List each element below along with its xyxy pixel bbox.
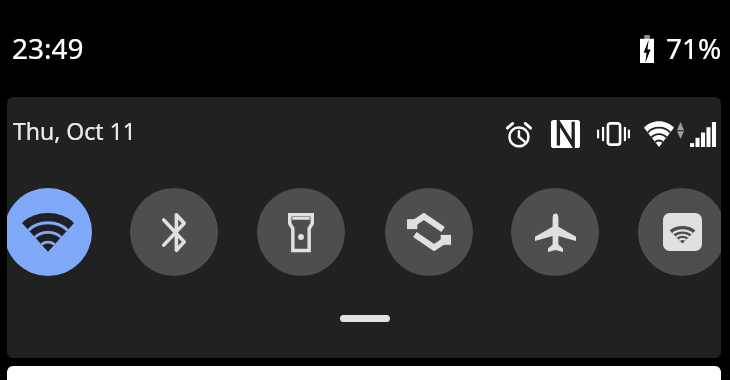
button[interactable]: Bluetooth	[130, 188, 218, 276]
staticText: 12:40	[284, 352, 431, 380]
button[interactable]: Expand quick settings	[340, 315, 390, 322]
staticText: Thu, Oct 11	[13, 115, 136, 146]
button[interactable]: Hotspot	[638, 188, 721, 276]
button[interactable]: Airplane mode	[511, 188, 599, 276]
staticText: 71%	[666, 29, 722, 67]
button[interactable]: Auto-rotate	[385, 188, 473, 276]
button[interactable]: Flashlight	[257, 188, 345, 276]
button[interactable]: Wi-Fi	[7, 188, 92, 276]
staticText: 23:49	[12, 29, 84, 67]
